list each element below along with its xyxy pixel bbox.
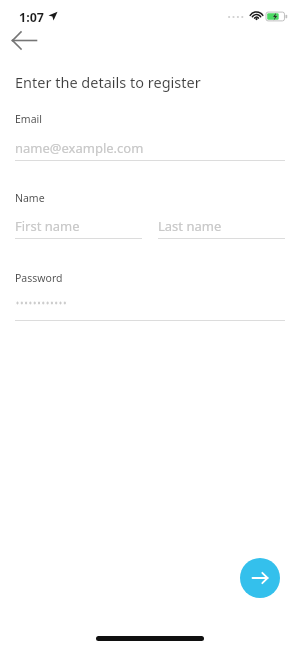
- staticText: 1:07: [19, 9, 44, 26]
- staticText: name@example.com: [15, 139, 144, 157]
- staticText: Last name: [158, 217, 222, 235]
- staticText: Name: [15, 191, 45, 205]
- button[interactable]: [15, 292, 285, 320]
- staticText: First name: [15, 217, 80, 235]
- staticText: Email: [15, 112, 42, 126]
- button[interactable]: First name: [15, 211, 142, 239]
- staticText: Enter the details to register: [15, 72, 201, 92]
- button[interactable]: Back: [7, 28, 43, 64]
- button[interactable]: Continue: [240, 558, 280, 598]
- button[interactable]: Last name: [158, 211, 285, 239]
- staticText: Password: [15, 271, 63, 285]
- button[interactable]: name@example.com: [15, 133, 285, 161]
